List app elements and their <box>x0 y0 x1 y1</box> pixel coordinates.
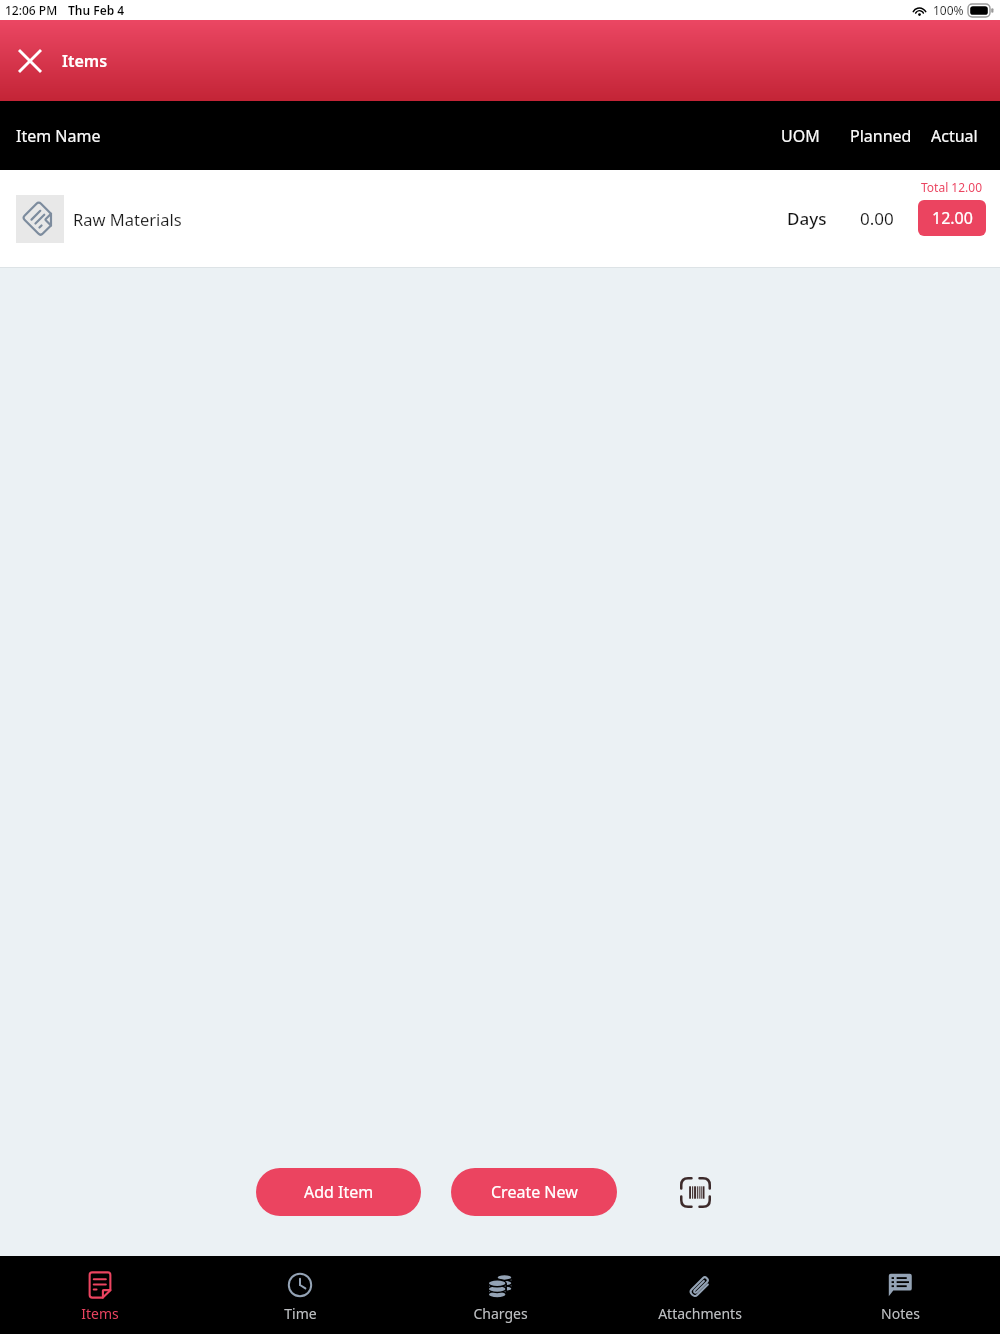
staticText: Actual <box>931 125 978 147</box>
button[interactable]: Notes <box>800 1256 1000 1334</box>
staticText: Thu Feb 4 <box>68 2 125 18</box>
button[interactable]: 12.00 <box>918 200 986 236</box>
button[interactable]: Close <box>8 39 52 83</box>
button[interactable]: Attachments <box>600 1256 800 1334</box>
staticText: Add Item <box>304 1181 374 1203</box>
staticText: Raw Materials <box>73 208 182 230</box>
staticText: Attachments <box>658 1304 742 1323</box>
button[interactable]: Raw Materials <box>0 170 1000 267</box>
staticText: UOM <box>781 125 820 147</box>
staticText: Create New <box>491 1181 578 1203</box>
button[interactable]: Create New <box>451 1168 617 1216</box>
staticText: Items <box>62 50 108 72</box>
staticText: Planned <box>850 125 912 147</box>
staticText: 100% <box>933 2 964 18</box>
staticText: 0.00 <box>860 207 894 230</box>
button[interactable]: Charges <box>400 1256 600 1334</box>
staticText: Notes <box>881 1304 920 1323</box>
button[interactable]: Items <box>0 1256 200 1334</box>
staticText: 12.00 <box>932 207 973 229</box>
staticText: Days <box>787 207 827 230</box>
button[interactable]: Time <box>200 1256 400 1334</box>
staticText: Time <box>284 1304 317 1323</box>
staticText: Item Name <box>16 125 101 147</box>
button[interactable]: Scan barcode <box>671 1168 719 1216</box>
button[interactable]: Add Item <box>256 1168 421 1216</box>
staticText: Charges <box>473 1304 528 1323</box>
staticText: 12:06 PM <box>5 2 58 18</box>
staticText: Total 12.00 <box>921 179 983 195</box>
staticText: Items <box>81 1304 119 1323</box>
